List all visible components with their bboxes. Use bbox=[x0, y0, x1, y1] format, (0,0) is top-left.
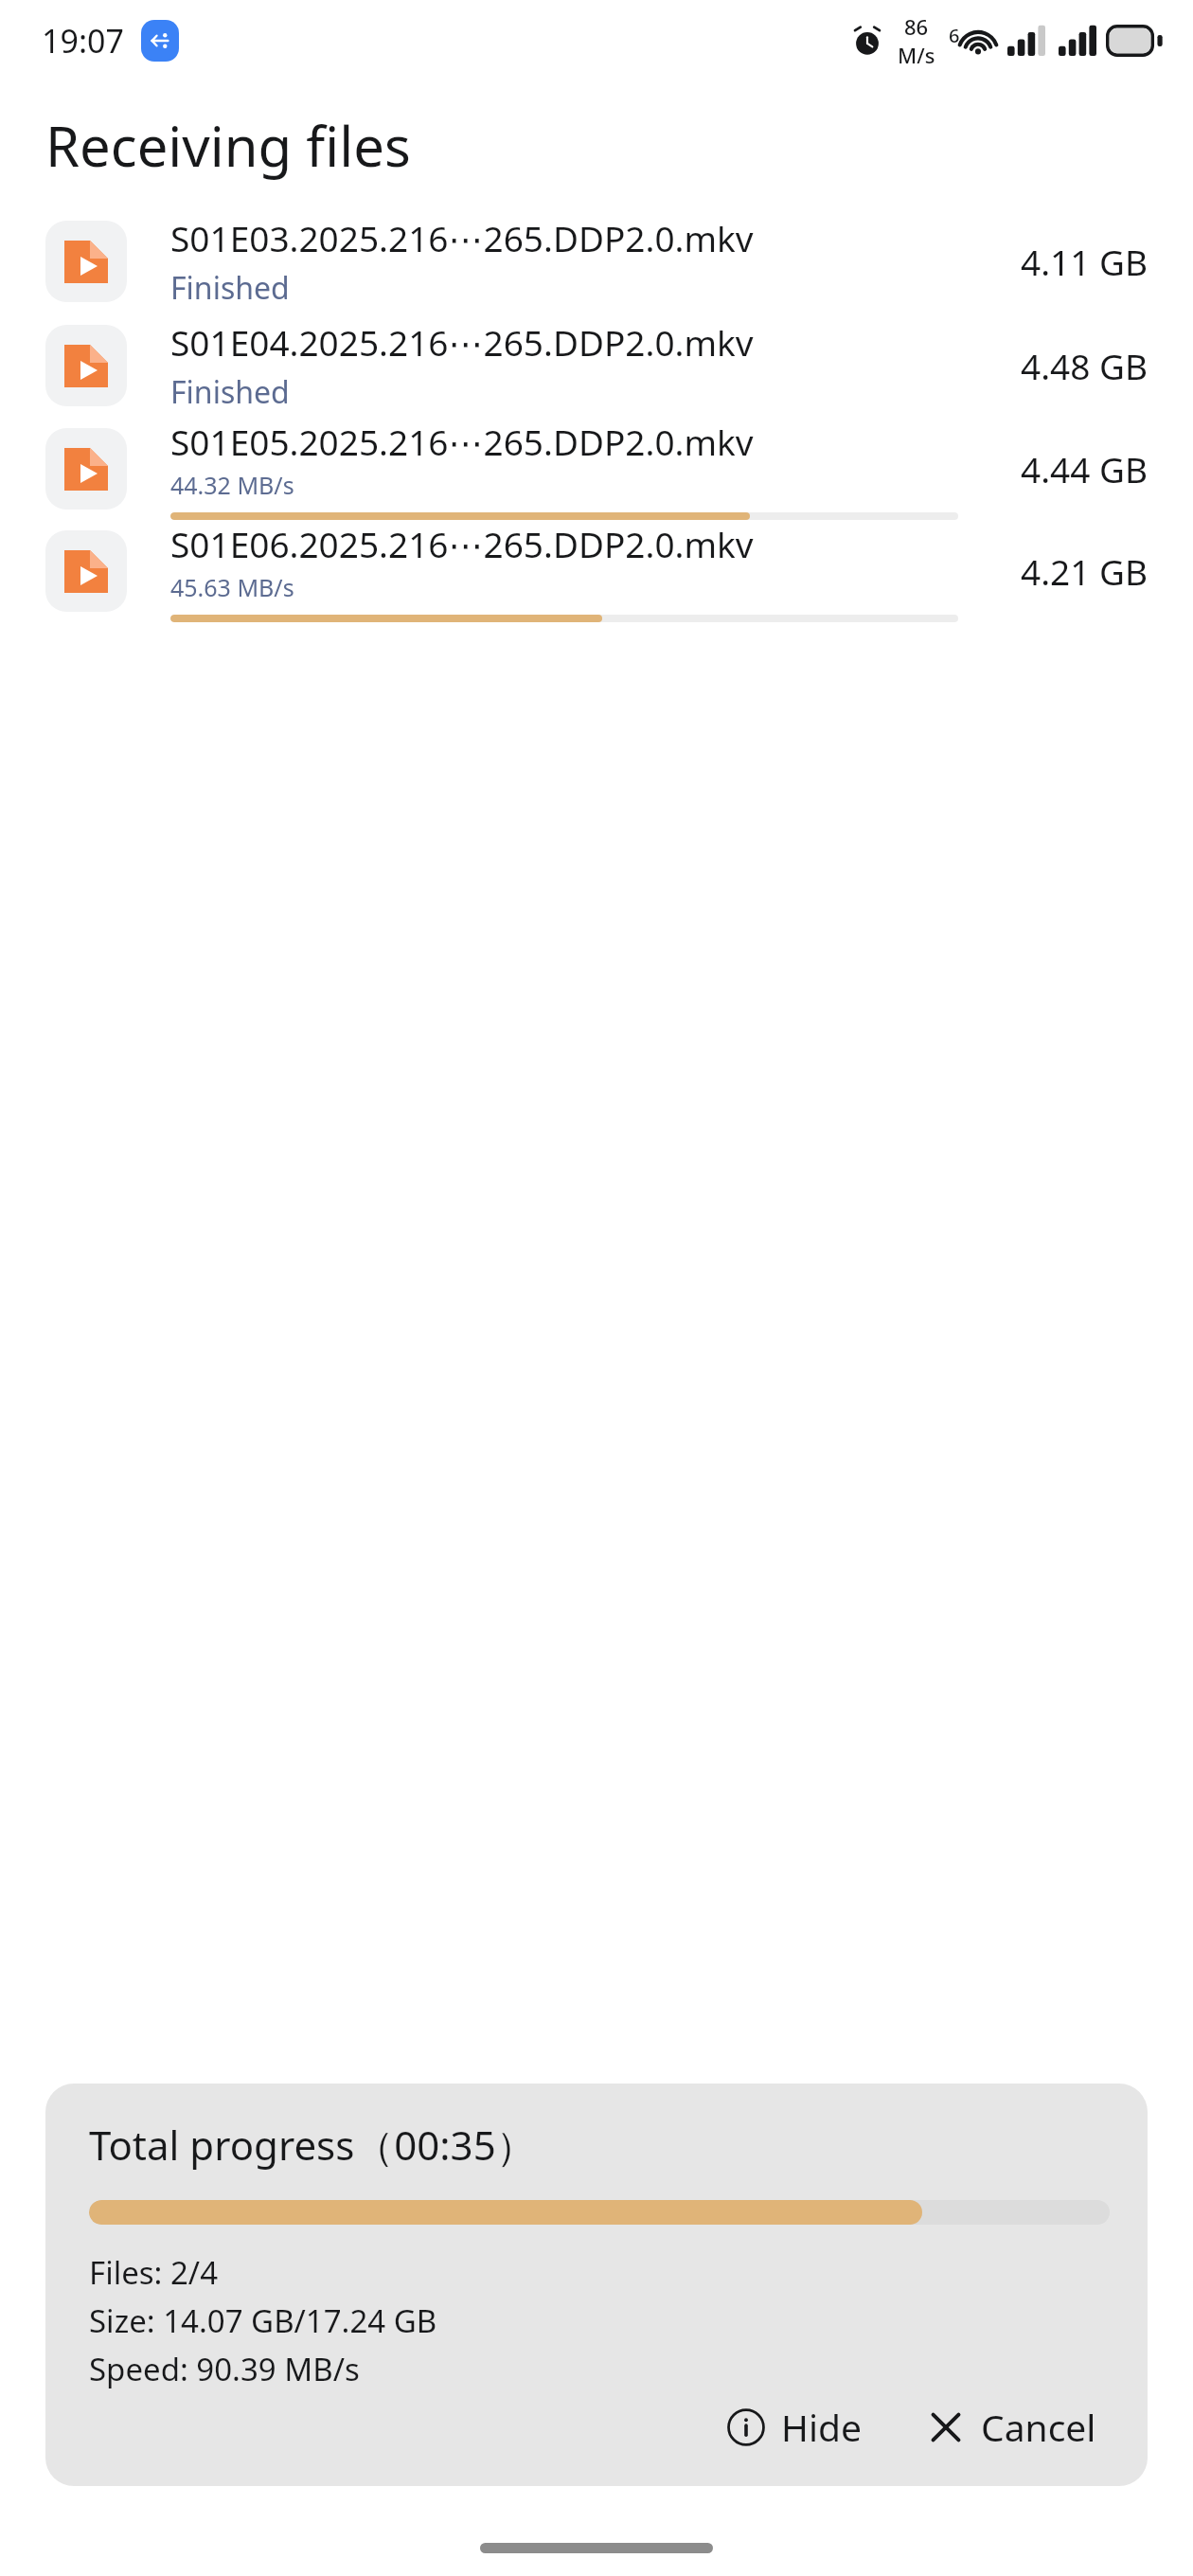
staticText: 4.48 GB bbox=[979, 342, 1148, 389]
staticText: 4.11 GB bbox=[979, 238, 1148, 285]
staticText: Total progress（00:35） bbox=[89, 2118, 536, 2172]
button[interactable]: S01E03.2025.216⋯265.DDP2.0.mkv bbox=[0, 209, 1193, 313]
staticText: Cancel bbox=[981, 2402, 1096, 2452]
staticText: Finished bbox=[170, 267, 290, 309]
staticText: 4.44 GB bbox=[979, 445, 1148, 492]
staticText: Files: 2/4 bbox=[89, 2251, 219, 2294]
button[interactable]: S01E06.2025.216⋯265.DDP2.0.mkv bbox=[0, 520, 1193, 622]
button[interactable]: S01E04.2025.216⋯265.DDP2.0.mkv bbox=[0, 313, 1193, 418]
staticText: Size: 14.07 GB/17.24 GB bbox=[89, 2299, 437, 2342]
button[interactable]: Hide bbox=[713, 2392, 875, 2461]
button[interactable]: Cancel bbox=[913, 2392, 1110, 2461]
staticText: 44.32 MB/s bbox=[170, 469, 294, 501]
staticText: S01E05.2025.216⋯265.DDP2.0.mkv bbox=[170, 418, 754, 465]
staticText: 86 bbox=[904, 12, 929, 41]
staticText: M/s bbox=[898, 41, 935, 69]
button[interactable]: S01E05.2025.216⋯265.DDP2.0.mkv bbox=[0, 418, 1193, 520]
staticText: S01E03.2025.216⋯265.DDP2.0.mkv bbox=[170, 214, 754, 261]
staticText: Speed: 90.39 MB/s bbox=[89, 2348, 360, 2390]
staticText: Receiving files bbox=[45, 108, 411, 183]
staticText: 4.21 GB bbox=[979, 547, 1148, 595]
staticText: 19:07 bbox=[42, 19, 124, 63]
staticText: S01E06.2025.216⋯265.DDP2.0.mkv bbox=[170, 520, 754, 567]
staticText: 45.63 MB/s bbox=[170, 571, 294, 603]
staticText: S01E04.2025.216⋯265.DDP2.0.mkv bbox=[170, 318, 754, 366]
staticText: 6 bbox=[949, 23, 960, 48]
staticText: Hide bbox=[781, 2402, 862, 2452]
staticText: Finished bbox=[170, 371, 290, 413]
